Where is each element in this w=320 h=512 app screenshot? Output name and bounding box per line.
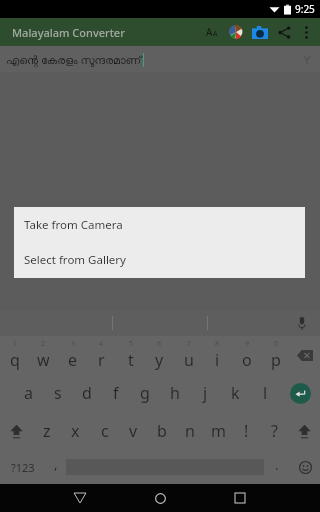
button[interactable]: g [130, 374, 160, 412]
button[interactable]: z [32, 412, 61, 450]
staticText: h [170, 382, 180, 404]
button[interactable]: d [72, 374, 101, 412]
staticText: n [185, 420, 195, 442]
button[interactable]: Shift [0, 412, 32, 450]
button[interactable]: Emoji [290, 450, 320, 484]
staticText: 7 [187, 339, 192, 349]
staticText: A [213, 29, 218, 39]
button[interactable]: Shift [288, 412, 320, 450]
staticText: y [155, 349, 164, 371]
button[interactable]: Style [224, 20, 248, 44]
staticText: Select from Gallery [24, 252, 126, 268]
button[interactable]: എന്റെ കേരളം സുന്ദരമാണ് [0, 46, 320, 72]
button[interactable]: f [101, 374, 130, 412]
staticText: e [68, 349, 78, 371]
staticText: 8 [215, 339, 220, 349]
button[interactable]: s [43, 374, 72, 412]
button[interactable]: Share [272, 20, 296, 44]
button[interactable]: j [190, 374, 220, 412]
button[interactable]: Font size [200, 20, 224, 44]
staticText: p [271, 349, 281, 371]
button[interactable]: 6 [145, 336, 174, 374]
staticText: g [140, 382, 150, 404]
staticText: . [275, 456, 279, 474]
button[interactable]: 0 [261, 336, 290, 374]
button[interactable]: Enter [280, 374, 320, 412]
staticText: d [82, 382, 92, 404]
button[interactable]: 3 [58, 336, 87, 374]
staticText: Malayalam Converter [12, 25, 125, 40]
staticText: , [54, 455, 58, 473]
staticText: ! [244, 420, 249, 442]
staticText: f [113, 382, 119, 404]
staticText: v [129, 420, 138, 442]
button[interactable]: More options [296, 22, 316, 42]
button[interactable]: Back [63, 484, 97, 512]
button[interactable]: b [148, 412, 176, 450]
button[interactable]: Take from Camera [14, 207, 305, 242]
staticText: 0 [274, 339, 279, 349]
staticText: A [206, 25, 213, 39]
staticText: j [203, 382, 208, 404]
staticText: 1 [13, 339, 18, 349]
button[interactable]: 5 [116, 336, 145, 374]
staticText: എന്റെ കേരളം സുന്ദരമാണ് [6, 52, 142, 67]
staticText: x [71, 420, 80, 442]
button[interactable]: ! [232, 412, 260, 450]
staticText: r [98, 349, 105, 371]
button[interactable]: m [204, 412, 232, 450]
staticText: 5 [129, 339, 134, 349]
button[interactable]: 4 [87, 336, 116, 374]
button[interactable]: 2 [29, 336, 58, 374]
button[interactable]: h [160, 374, 190, 412]
staticText: 9 [245, 339, 250, 349]
button[interactable]: l [250, 374, 280, 412]
button[interactable]: Camera [248, 20, 272, 44]
button[interactable]: ? [260, 412, 288, 450]
button[interactable]: Recent apps [223, 484, 257, 512]
staticText: o [242, 349, 252, 371]
button[interactable]: k [220, 374, 250, 412]
button[interactable]: v [119, 412, 148, 450]
staticText: 3 [71, 339, 76, 349]
button[interactable]: a [14, 374, 43, 412]
button[interactable]: 8 [203, 336, 232, 374]
staticText: l [263, 382, 268, 404]
staticText: ?123 [11, 460, 35, 475]
button[interactable]: 1 [0, 336, 29, 374]
button[interactable]: ?123 [0, 450, 46, 484]
staticText: 2 [41, 339, 46, 349]
staticText: w [37, 349, 50, 371]
staticText: b [157, 420, 167, 442]
button[interactable]: 9 [232, 336, 261, 374]
staticText: 4 [99, 339, 104, 349]
staticText: i [215, 349, 220, 371]
staticText: z [43, 420, 51, 442]
staticText: 6 [157, 339, 162, 349]
button[interactable]: 7 [174, 336, 203, 374]
staticText: s [54, 382, 62, 404]
button[interactable]: Select from Gallery [14, 242, 305, 278]
staticText: a [24, 382, 33, 404]
staticText: k [231, 382, 240, 404]
button[interactable]: Voice input [292, 313, 312, 333]
staticText: Take from Camera [24, 217, 123, 233]
staticText: q [10, 349, 20, 371]
button[interactable]: n [176, 412, 204, 450]
button[interactable]: c [90, 412, 119, 450]
button[interactable]: Backspace [290, 336, 320, 374]
staticText: c [101, 420, 109, 442]
staticText: t [128, 349, 134, 371]
button[interactable]: Home [143, 484, 177, 512]
staticText: ? [271, 420, 278, 442]
button[interactable]: , [46, 450, 66, 484]
button[interactable]: x [61, 412, 90, 450]
staticText: u [184, 349, 194, 371]
staticText: 9:25 [295, 2, 315, 16]
staticText: m [211, 420, 226, 442]
